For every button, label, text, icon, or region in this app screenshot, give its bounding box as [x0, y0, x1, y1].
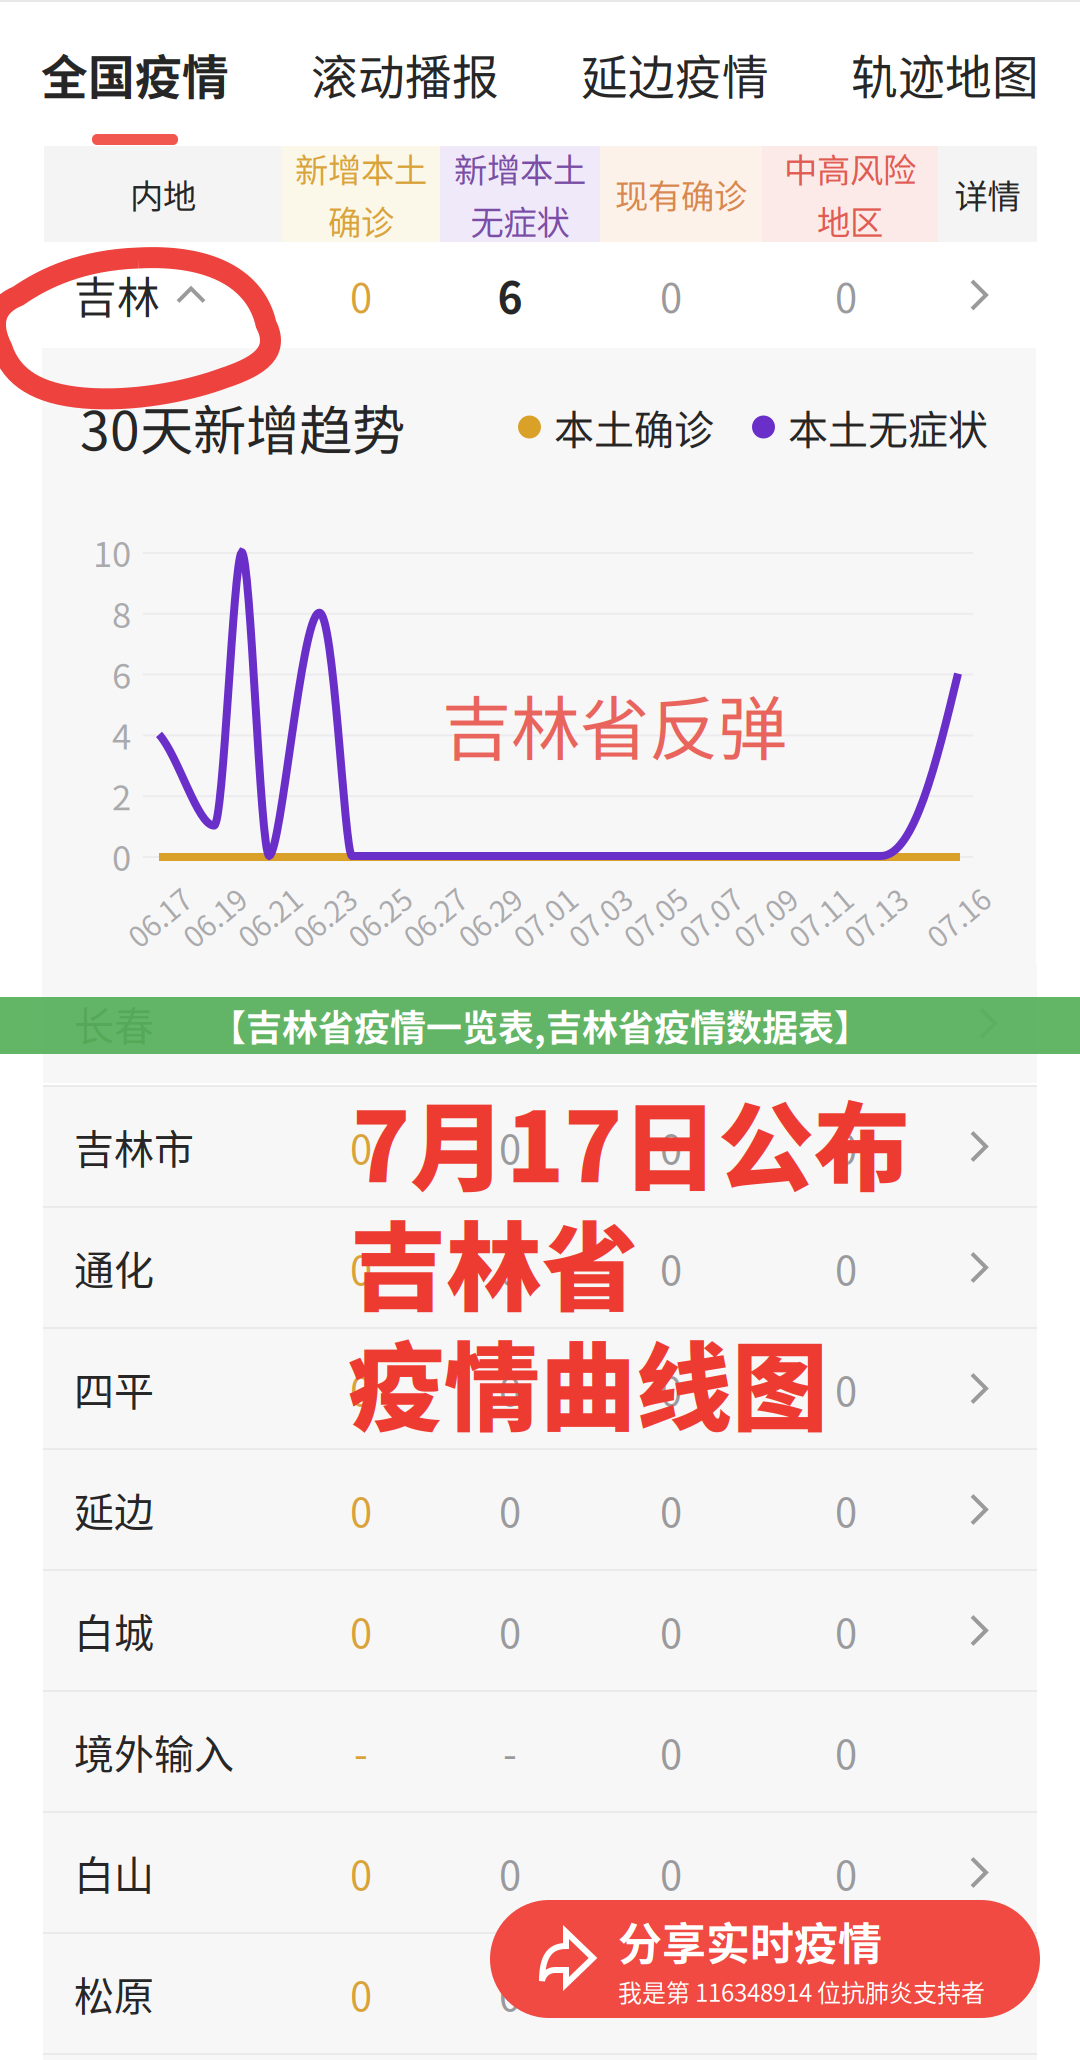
- button[interactable]: 延边: [43, 1450, 1037, 1569]
- staticText: 06.19: [178, 896, 250, 938]
- staticText: 分享实时疫情: [618, 1909, 882, 1973]
- staticText: 0: [499, 1117, 521, 1175]
- staticText: 0: [350, 1964, 372, 2022]
- staticText: 07.09: [729, 896, 801, 938]
- staticText: 07.13: [839, 896, 911, 938]
- staticText: 现有确诊: [615, 170, 747, 218]
- staticText: -: [354, 1722, 368, 1780]
- staticText: 0: [350, 1843, 372, 1901]
- staticText: 0: [835, 1117, 857, 1175]
- staticText: 轨迹地图: [851, 40, 1039, 108]
- staticText: 0: [835, 1359, 857, 1417]
- staticText: 07.07: [674, 896, 746, 938]
- staticText: 0: [835, 1843, 857, 1901]
- staticText: 地区: [817, 196, 883, 244]
- staticText: 0: [350, 1480, 372, 1538]
- staticText: 延边疫情: [581, 40, 769, 108]
- staticText: 确诊: [328, 196, 394, 244]
- staticText: 0: [660, 1964, 682, 2022]
- staticText: 0: [350, 1359, 372, 1417]
- staticText: 0: [835, 266, 857, 324]
- button[interactable]: 境外输入: [43, 1692, 1037, 1811]
- button[interactable]: 全国疫情: [0, 0, 270, 146]
- staticText: 0: [660, 1722, 682, 1780]
- staticText: 07.01: [509, 896, 581, 938]
- staticText: 内地: [130, 170, 196, 218]
- button[interactable]: 长春: [43, 964, 1037, 1083]
- staticText: 07.03: [564, 896, 636, 938]
- button[interactable]: 通化: [43, 1208, 1037, 1327]
- staticText: 0: [499, 1601, 521, 1659]
- staticText: 0: [660, 1843, 682, 1901]
- staticText: 0: [499, 1480, 521, 1538]
- staticText: 白城: [74, 1601, 154, 1659]
- staticText: 0: [350, 1601, 372, 1659]
- button[interactable]: 延边疫情: [540, 0, 810, 146]
- staticText: 06.23: [288, 896, 360, 938]
- button[interactable]: 白山: [43, 1813, 1037, 1932]
- staticText: 本土无症状: [788, 398, 988, 456]
- staticText: 松原: [74, 1964, 154, 2022]
- staticText: 8: [112, 588, 131, 638]
- staticText: 中高风险: [784, 144, 916, 192]
- button[interactable]: 吉林市: [43, 1087, 1037, 1206]
- button[interactable]: 白城: [43, 1571, 1037, 1690]
- staticText: 境外输入: [74, 1722, 234, 1780]
- staticText: 0: [660, 1480, 682, 1538]
- staticText: 06.21: [233, 896, 305, 938]
- staticText: 06.17: [123, 896, 195, 938]
- staticText: 详情: [954, 170, 1020, 218]
- staticText: 无症状: [470, 196, 569, 244]
- staticText: 06.29: [454, 896, 526, 938]
- button[interactable]: 滚动播报: [270, 0, 540, 146]
- staticText: 0: [499, 1238, 521, 1296]
- staticText: 4: [112, 709, 131, 759]
- staticText: 0: [350, 1117, 372, 1175]
- staticText: 长春: [74, 994, 154, 1052]
- staticText: 07.11: [784, 896, 856, 938]
- staticText: 【吉林省疫情一览表,吉林省疫情数据表】: [210, 999, 870, 1051]
- staticText: 全国疫情: [41, 40, 229, 108]
- staticText: 通化: [74, 1238, 154, 1296]
- staticText: 0: [835, 1480, 857, 1538]
- staticText: 新增本土: [295, 144, 427, 192]
- staticText: 0: [499, 1843, 521, 1901]
- staticText: 7月17日公布: [352, 1071, 910, 1210]
- staticText: -: [503, 1722, 517, 1780]
- staticText: 0: [350, 1238, 372, 1296]
- staticText: 0: [660, 1238, 682, 1296]
- staticText: 07.16: [922, 896, 994, 938]
- staticText: 0: [350, 266, 372, 324]
- staticText: 0: [660, 266, 682, 324]
- staticText: 吉林市: [74, 1117, 194, 1175]
- staticText: 0: [499, 1964, 521, 2022]
- staticText: 疫情曲线图: [348, 1311, 828, 1450]
- staticText: 0: [660, 1601, 682, 1659]
- staticText: 0: [660, 1117, 682, 1175]
- staticText: 滚动播报: [311, 40, 499, 108]
- staticText: 延边: [74, 1480, 154, 1538]
- staticText: 吉林省: [350, 1191, 638, 1330]
- button[interactable]: 四平: [43, 1329, 1037, 1448]
- staticText: 新增本土: [454, 144, 586, 192]
- staticText: 0: [835, 1238, 857, 1296]
- button[interactable]: 轨迹地图: [810, 0, 1080, 146]
- staticText: 吉林: [74, 264, 160, 326]
- staticText: 06.27: [398, 896, 470, 938]
- staticText: 0: [660, 1359, 682, 1417]
- button[interactable]: 吉林: [0, 242, 1080, 348]
- staticText: 2: [112, 770, 131, 820]
- button[interactable]: 分享实时疫情: [490, 1900, 1040, 2018]
- staticText: 0: [499, 1359, 521, 1417]
- staticText: 06.25: [343, 896, 415, 938]
- staticText: 07.05: [619, 896, 691, 938]
- staticText: 0: [835, 1722, 857, 1780]
- button[interactable]: 松原: [43, 1934, 1037, 2053]
- staticText: 6: [112, 648, 131, 699]
- staticText: 6: [497, 264, 522, 326]
- staticText: 本土确诊: [554, 398, 714, 456]
- staticText: 四平: [74, 1359, 154, 1417]
- staticText: 我是第 116348914 位抗肺炎支持者: [618, 1974, 985, 2009]
- staticText: 白山: [74, 1843, 154, 1901]
- staticText: 吉林省反弹: [442, 674, 787, 774]
